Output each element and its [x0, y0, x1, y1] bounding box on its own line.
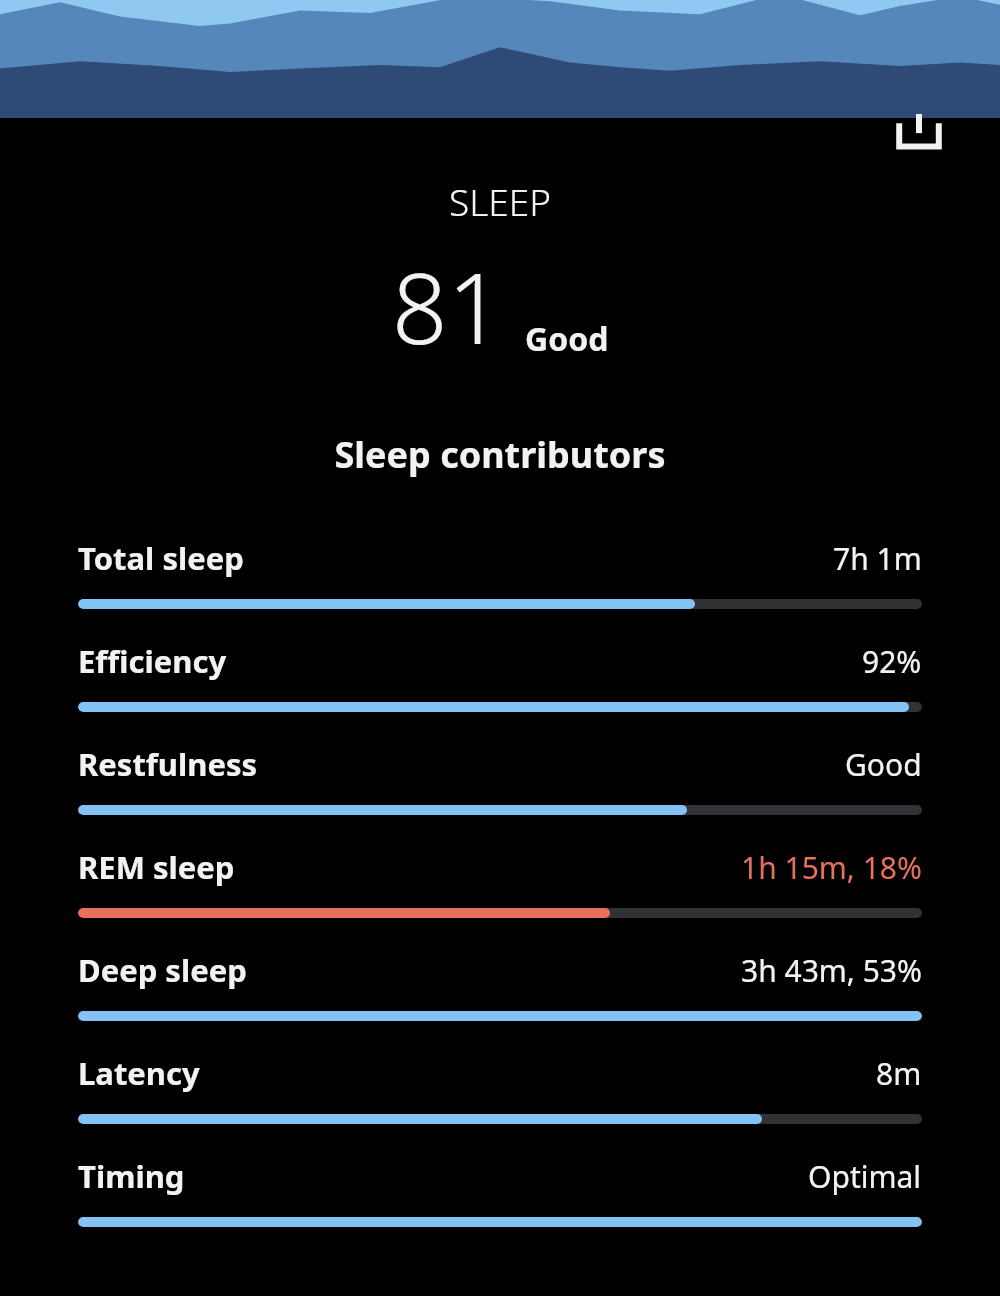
staticText: Efficiency: [78, 640, 862, 682]
staticText: Sleep contributors: [0, 430, 1000, 479]
staticText: Optimal: [808, 1156, 922, 1197]
button[interactable]: Restfulness: [0, 743, 1000, 846]
staticText: SLEEP: [0, 176, 1000, 226]
staticText: 92%: [862, 641, 922, 682]
staticText: Latency: [78, 1052, 876, 1094]
staticText: Good: [845, 744, 922, 785]
button[interactable]: Deep sleep: [0, 949, 1000, 1052]
staticText: Deep sleep: [78, 949, 741, 991]
button[interactable]: Latency: [0, 1052, 1000, 1155]
button[interactable]: Total sleep: [0, 537, 1000, 640]
staticText: Good: [525, 317, 609, 361]
staticText: Timing: [78, 1155, 808, 1197]
button[interactable]: Save: [886, 114, 952, 172]
staticText: 7h 1m: [833, 538, 922, 579]
staticText: 3h 43m, 53%: [741, 950, 922, 991]
button[interactable]: REM sleep: [0, 846, 1000, 949]
staticText: 1h 15m, 18%: [741, 847, 922, 888]
staticText: REM sleep: [78, 846, 741, 888]
staticText: Restfulness: [78, 743, 845, 785]
button[interactable]: Efficiency: [0, 640, 1000, 743]
staticText: 81: [392, 240, 503, 372]
staticText: 8m: [876, 1053, 922, 1094]
staticText: Total sleep: [78, 537, 833, 579]
button[interactable]: Timing: [0, 1155, 1000, 1258]
